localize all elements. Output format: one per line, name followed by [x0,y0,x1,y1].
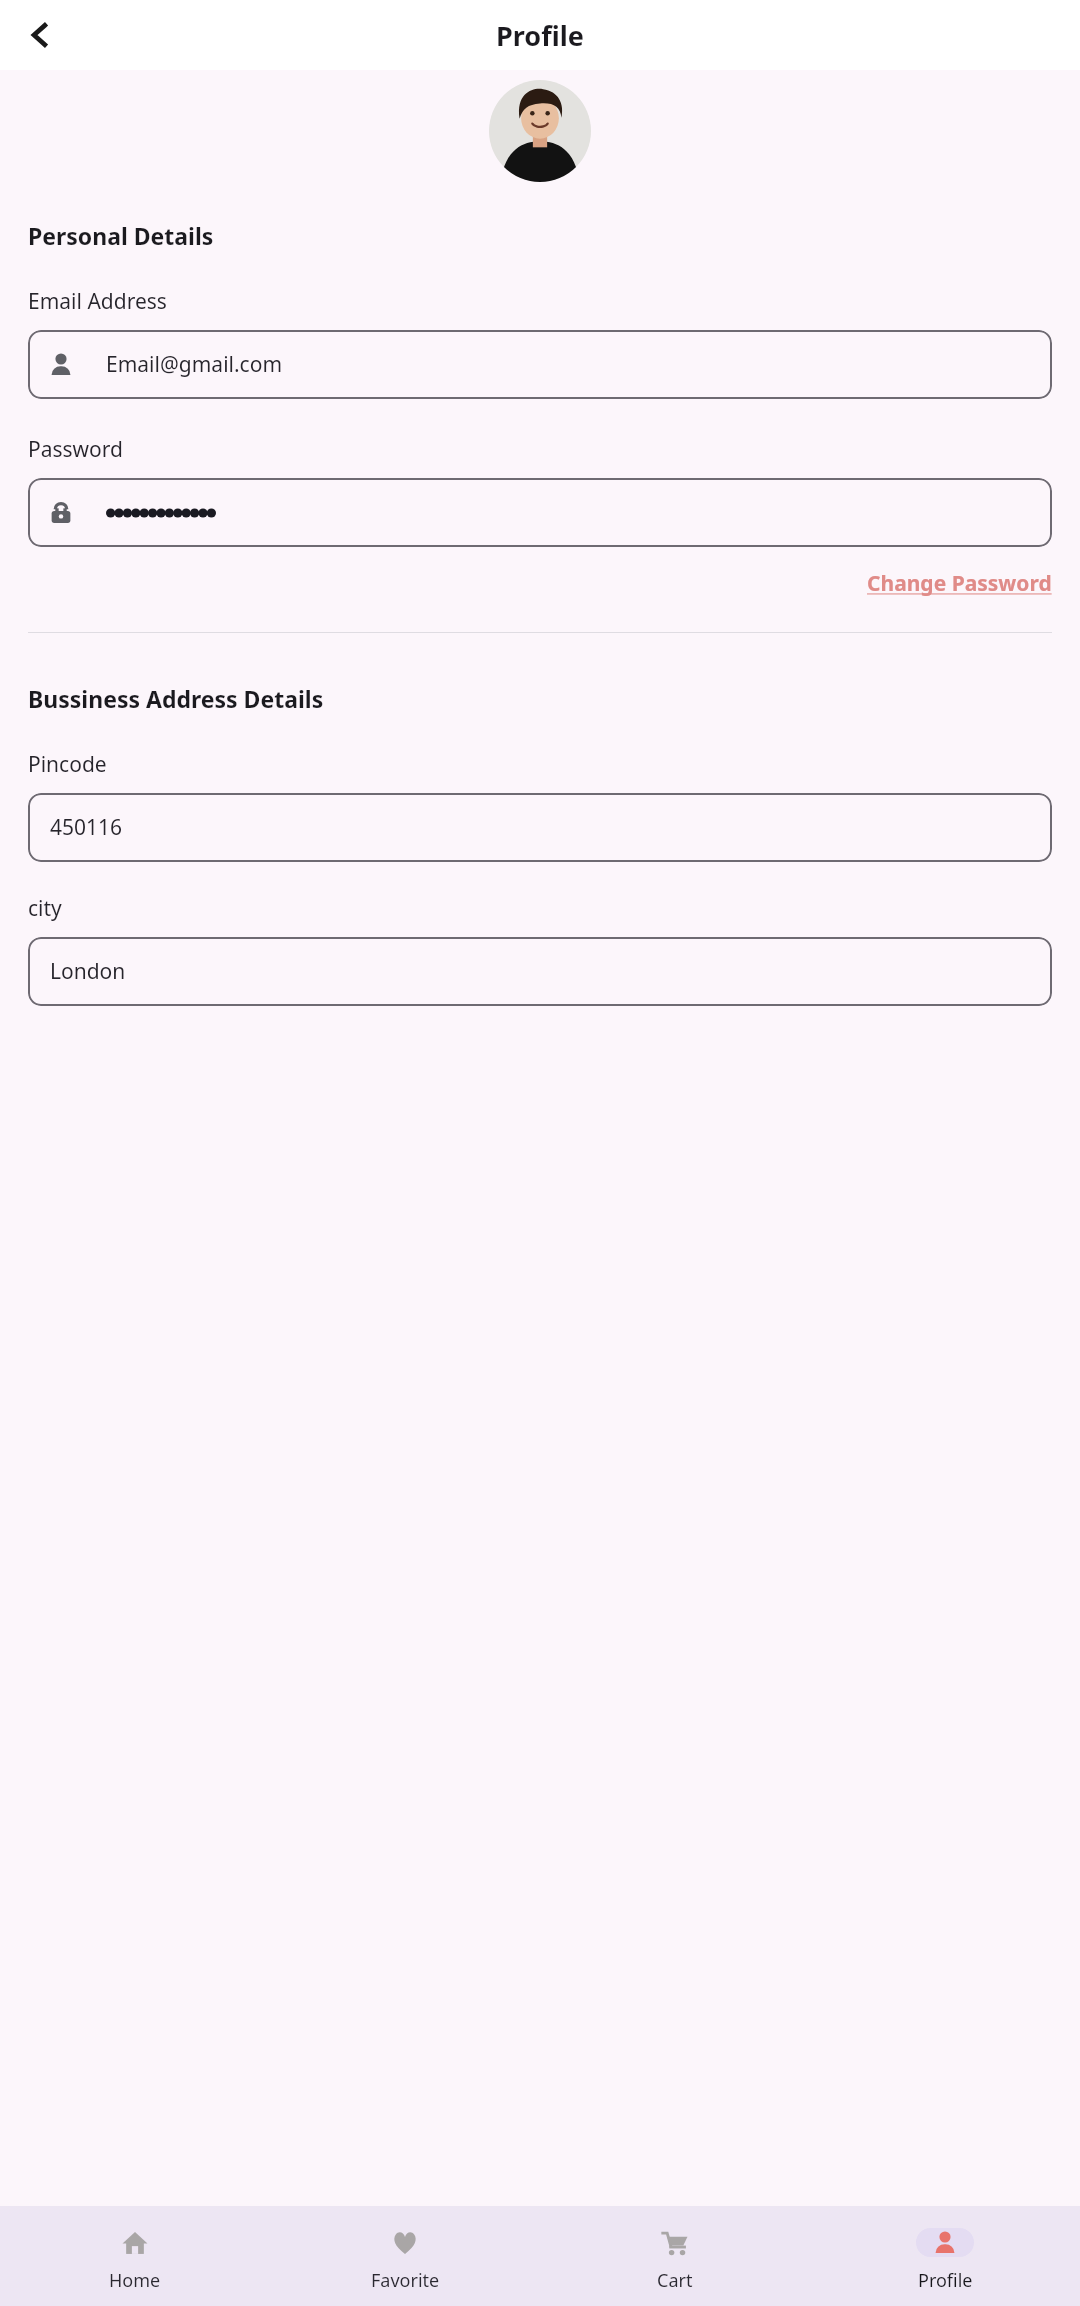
staticText: Home [109,2268,161,2293]
button[interactable]: London [28,937,1052,1006]
button[interactable]: Cart [540,2206,810,2306]
button[interactable]: Back [14,9,66,61]
staticText: London [50,957,126,986]
staticText: Bussiness Address Details [28,683,324,714]
staticText: Email@gmail.com [106,350,283,379]
button[interactable]: Change Password [867,569,1052,598]
staticText: 450116 [50,813,123,842]
button[interactable]: 450116 [28,793,1052,862]
button[interactable]: Home [0,2206,270,2306]
staticText: Change Password [867,569,1052,598]
staticText: Password [28,435,123,464]
button[interactable]: Profile photo [489,80,591,182]
staticText: Email Address [28,287,167,316]
staticText: city [28,894,62,923]
button[interactable]: Email@gmail.com [28,330,1052,399]
button[interactable]: Favorite [270,2206,540,2306]
staticText: Profile [918,2268,973,2293]
staticText: Pincode [28,750,107,779]
button[interactable] [28,478,1052,547]
staticText: Personal Details [28,220,214,251]
staticText: Profile [496,17,584,54]
staticText: Cart [657,2268,693,2293]
staticText: Favorite [371,2268,440,2293]
button[interactable]: Profile [810,2206,1080,2306]
